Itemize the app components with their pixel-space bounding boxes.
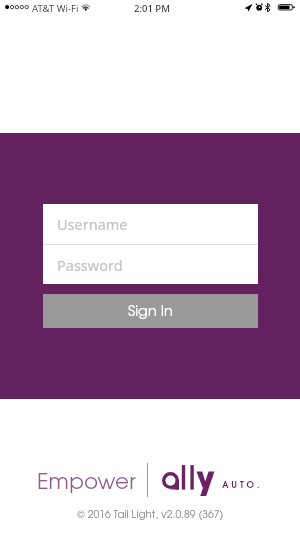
staticText: Username (57, 214, 128, 234)
button[interactable]: Username (43, 204, 258, 244)
staticText: AUTO. (222, 481, 263, 489)
staticText: 2:01 PM (134, 2, 170, 15)
staticText: Password (57, 255, 123, 275)
staticText: © 2016 Tail Light, v2.0.89 (367) (77, 510, 224, 520)
staticText: Empower (37, 473, 136, 493)
staticText: AT&T Wi-Fi (32, 2, 79, 15)
button[interactable]: Password (43, 245, 258, 284)
button[interactable]: Sign In (43, 294, 258, 328)
staticText: Sign In (128, 305, 173, 318)
